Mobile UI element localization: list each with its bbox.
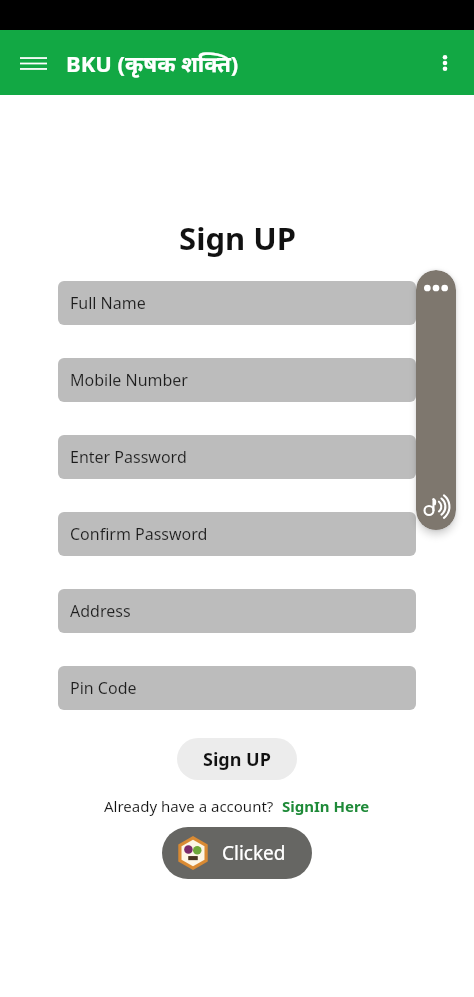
button[interactable]: SignIn Here [282,796,370,816]
staticText: Confirm Password [70,523,208,545]
staticText: Address [70,600,131,622]
button[interactable]: Mobile Number [58,358,416,402]
staticText: Sign UP [203,747,271,772]
staticText: Mobile Number [70,369,188,391]
button[interactable]: Confirm Password [58,512,416,556]
button[interactable]: Enter Password [58,435,416,479]
staticText: Already have a account? [104,796,274,816]
staticText: Pin Code [70,677,137,699]
staticText: Clicked [222,840,286,866]
staticText: Full Name [70,292,146,314]
button[interactable]: Floating assistant panel [416,270,456,530]
button[interactable]: Full Name [58,281,416,325]
button[interactable]: Address [58,589,416,633]
staticText: Enter Password [70,446,187,468]
staticText: SignIn Here [282,796,370,816]
button[interactable]: Sign UP [177,738,297,780]
button[interactable]: Pin Code [58,666,416,710]
staticText: Sign UP [179,217,296,259]
button[interactable]: Open navigation menu [10,40,56,86]
button[interactable]: More options [424,42,466,84]
staticText: BKU (कृषक शक्ति) [66,48,239,78]
